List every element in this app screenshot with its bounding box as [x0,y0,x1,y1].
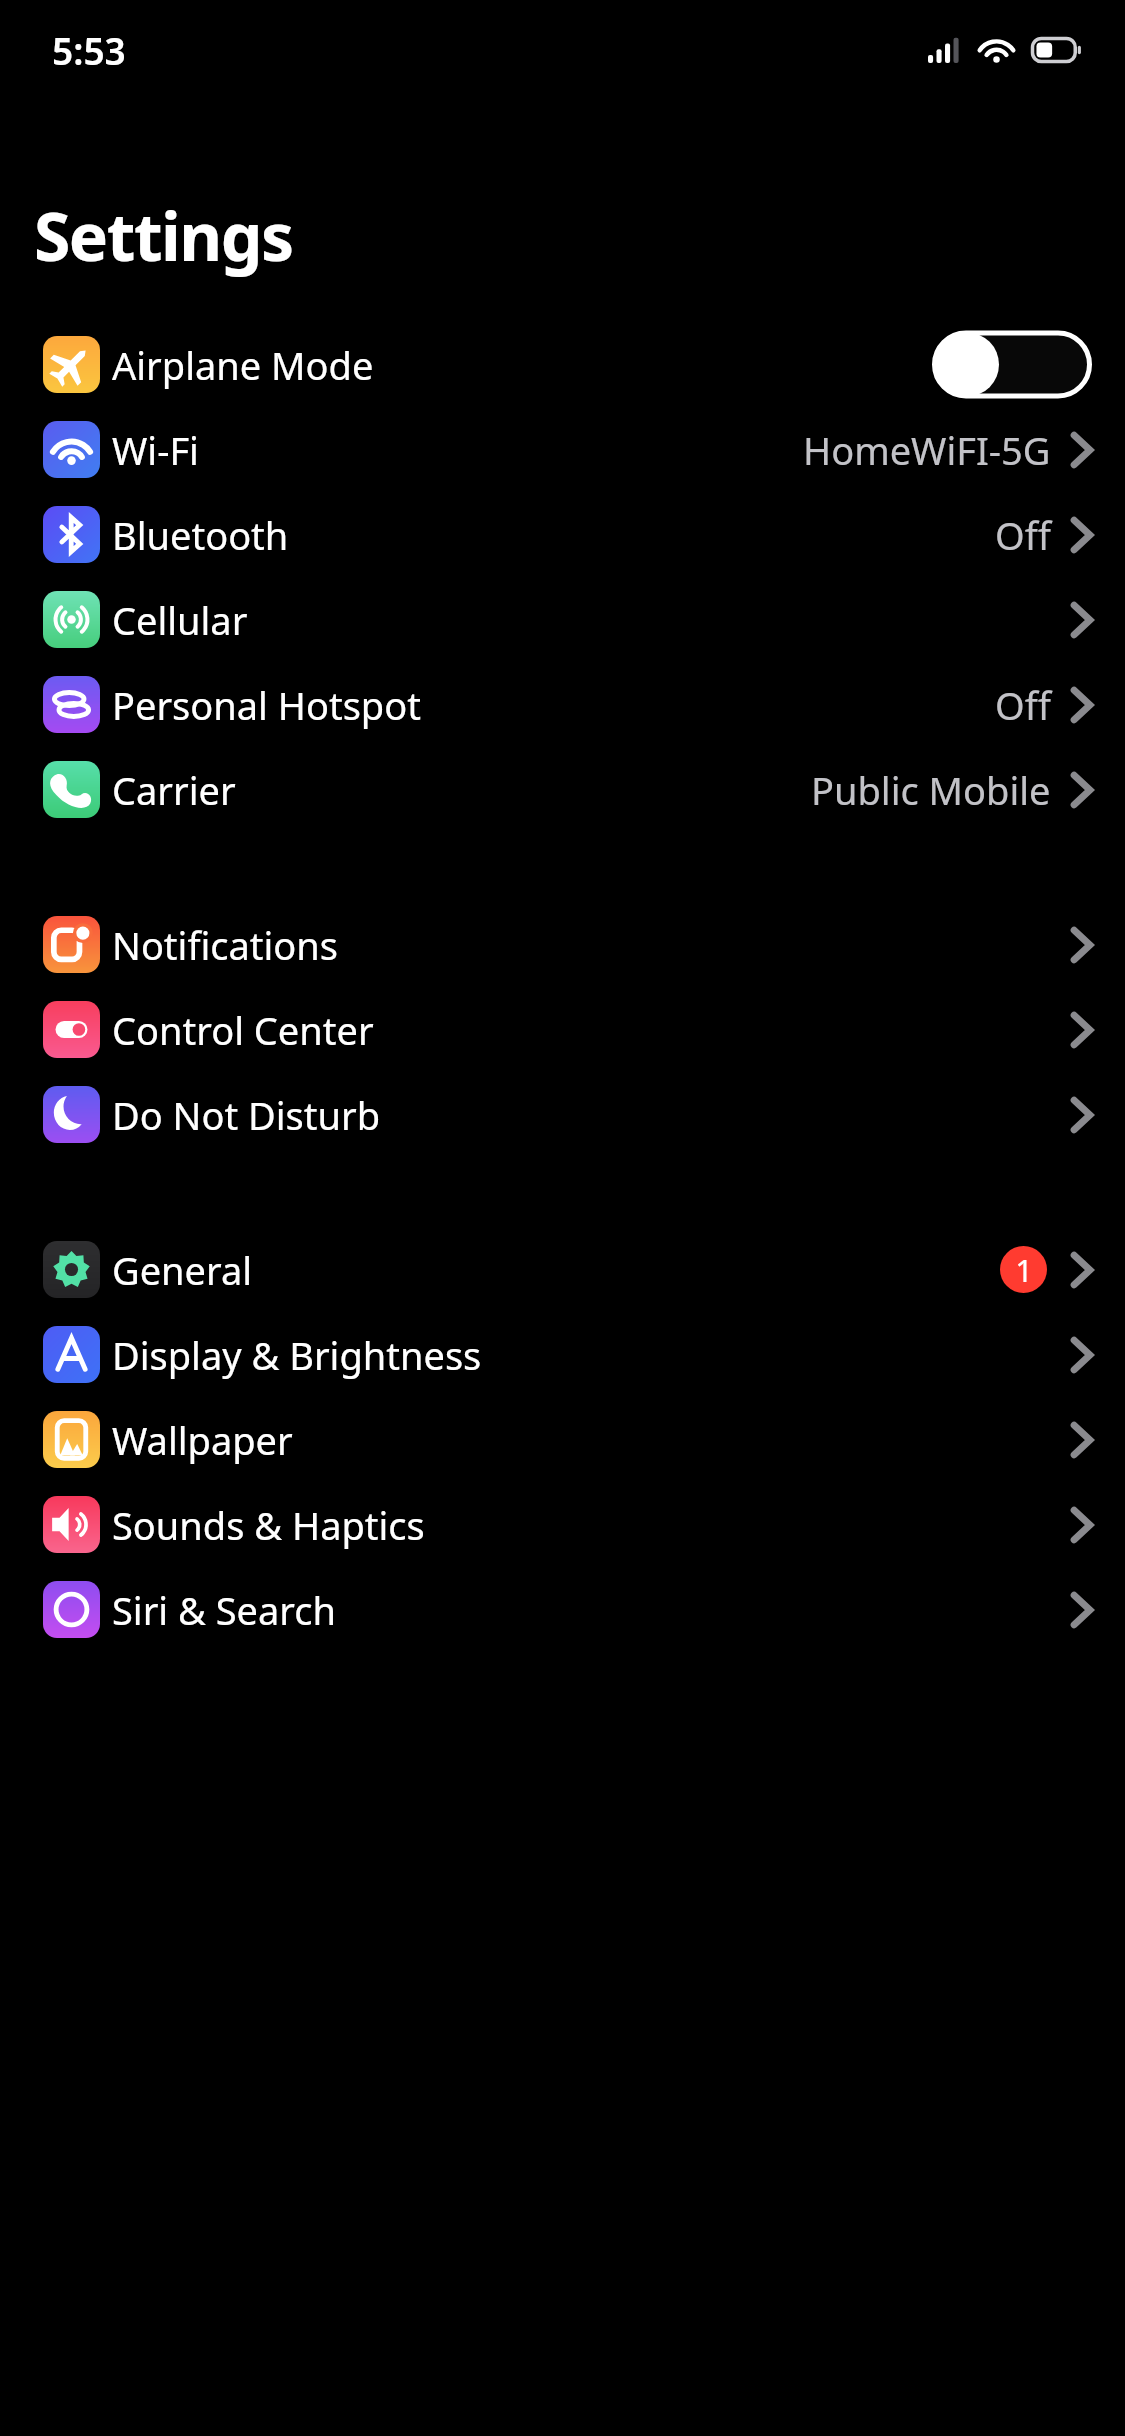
staticText: Notifications [112,919,339,971]
button[interactable]: Bluetooth [0,492,1125,577]
button[interactable]: Wallpaper [0,1397,1125,1482]
button[interactable]: Do Not Disturb [0,1072,1125,1157]
button[interactable]: Wi-Fi [0,407,1125,492]
staticText: Off [995,509,1051,561]
button[interactable]: Control Center [0,987,1125,1072]
button[interactable]: Personal Hotspot [0,662,1125,747]
staticText: Control Center [112,1004,374,1056]
button[interactable]: Notifications [0,902,1125,987]
staticText: 5:53 [52,25,126,75]
staticText: General [112,1244,253,1296]
staticText: Settings [34,190,293,280]
staticText: Sounds & Haptics [112,1499,425,1551]
staticText: Do Not Disturb [112,1089,381,1141]
button[interactable]: Display & Brightness [0,1312,1125,1397]
staticText: Bluetooth [112,509,289,561]
button[interactable]: Cellular [0,577,1125,662]
button[interactable]: Sounds & Haptics [0,1482,1125,1567]
staticText: Personal Hotspot [112,679,421,731]
staticText: Wallpaper [112,1414,293,1466]
staticText: Wi-Fi [112,424,199,476]
staticText: HomeWiFI-5G [803,424,1051,476]
button[interactable]: Airplane Mode [0,322,1125,407]
staticText: Airplane Mode [112,339,374,391]
staticText: Display & Brightness [112,1329,482,1381]
staticText: Cellular [112,594,248,646]
staticText: Off [995,679,1051,731]
button[interactable]: Carrier [0,747,1125,832]
staticText: Carrier [112,764,236,816]
staticText: Public Mobile [811,764,1051,816]
button[interactable]: Siri & Search [0,1567,1125,1652]
staticText: 1 [1015,1249,1033,1291]
staticText: Siri & Search [112,1584,337,1636]
button[interactable]: General [0,1227,1125,1312]
button[interactable]: Airplane Mode toggle [929,322,1092,407]
